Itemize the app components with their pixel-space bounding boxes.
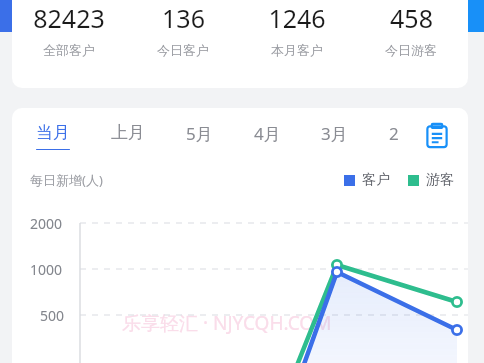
staticText: 当月	[36, 122, 70, 143]
staticText: 500	[40, 306, 65, 325]
staticText: 82423	[33, 1, 105, 35]
staticText: 客户	[362, 171, 390, 189]
staticText: 游客	[426, 171, 454, 189]
button[interactable]: 2	[383, 108, 405, 164]
staticText: 1246	[268, 1, 326, 35]
button[interactable]: 5月	[180, 108, 219, 164]
staticText: 2	[389, 122, 399, 145]
button[interactable]: 4月	[248, 108, 287, 164]
button[interactable]: 82423	[12, 1, 126, 58]
staticText: 4月	[254, 122, 281, 145]
staticText: 136	[162, 1, 205, 35]
button[interactable]: 上月	[105, 108, 151, 163]
staticText: 1000	[30, 260, 63, 279]
staticText: 今日客户	[157, 42, 209, 58]
button[interactable]: 458	[354, 1, 468, 58]
staticText: 全部客户	[43, 42, 95, 58]
staticText: 每日新增(人)	[30, 171, 103, 189]
button[interactable]: 1246	[240, 1, 354, 58]
button[interactable]: 当月	[30, 108, 76, 164]
staticText: 2000	[30, 214, 63, 233]
staticText: 上月	[111, 122, 145, 143]
staticText: 3月	[321, 122, 348, 145]
button[interactable]: Report	[406, 108, 468, 164]
button[interactable]: 3月	[315, 108, 354, 164]
staticText: 本月客户	[271, 42, 323, 58]
button[interactable]: 136	[126, 1, 240, 58]
staticText: 458	[390, 1, 433, 35]
staticText: 5月	[186, 122, 213, 145]
staticText: 乐享轻汇 · NJYCQH.COM	[122, 310, 332, 336]
staticText: 今日游客	[385, 42, 437, 58]
